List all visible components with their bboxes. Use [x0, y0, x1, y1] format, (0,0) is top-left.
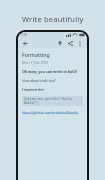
button[interactable]: Pin — [56, 39, 64, 47]
staticText: Formatting — [22, 51, 50, 58]
staticText: How about italic too? — [22, 78, 57, 83]
staticText: System.out.println("Hello World"); — [24, 97, 72, 105]
button[interactable]: More options — [76, 39, 84, 47]
button[interactable]: Share — [66, 39, 74, 47]
staticText: https://github.com/nrthwlsx/Notally — [22, 110, 78, 114]
staticText: Mar 17, Dec 2023 — [22, 61, 48, 65]
staticText: Oh wow, you can write in bold! — [22, 69, 77, 74]
button[interactable]: Back — [21, 39, 29, 47]
staticText: 7:06 — [21, 33, 28, 37]
staticText: I wanted this — [22, 87, 44, 92]
button[interactable]: https://github.com/nrthwlsx/Notally — [22, 110, 78, 114]
staticText: Write beautifully — [22, 14, 84, 24]
